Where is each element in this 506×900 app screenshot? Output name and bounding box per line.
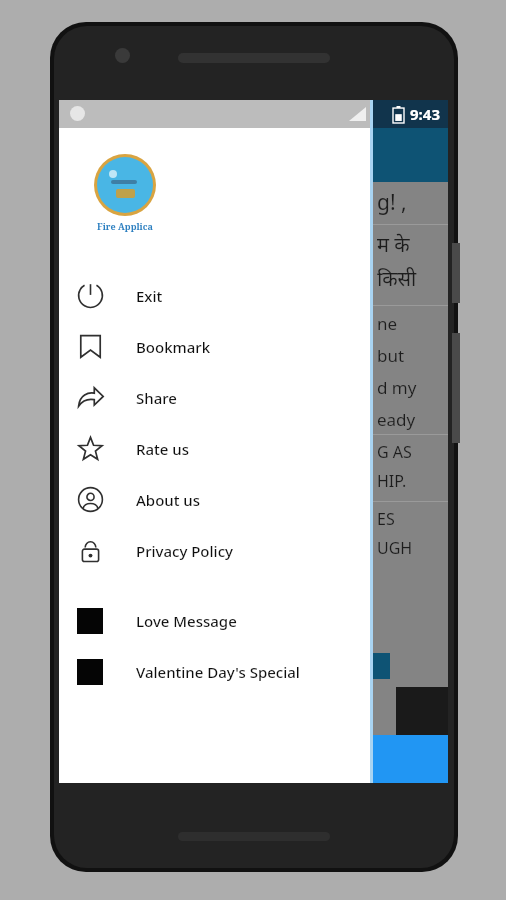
- staticText: Exit: [136, 286, 163, 306]
- button[interactable]: Rate us: [59, 423, 370, 474]
- staticText: ES: [377, 508, 395, 530]
- staticText: म के: [377, 231, 410, 258]
- button[interactable]: Exit app: [59, 270, 370, 321]
- staticText: Valentine Day's Special: [136, 662, 300, 682]
- staticText: Love Message: [136, 611, 237, 631]
- button[interactable]: Share: [59, 372, 370, 423]
- staticText: Fire Applica: [97, 220, 153, 232]
- staticText: किसी: [377, 265, 417, 292]
- button[interactable]: Privacy Policy: [59, 525, 370, 576]
- staticText: Rate us: [136, 439, 190, 459]
- staticText: About us: [136, 490, 201, 510]
- staticText: Share: [136, 388, 177, 408]
- staticText: Privacy Policy: [136, 541, 233, 561]
- staticText: eady: [377, 408, 416, 431]
- staticText: ne: [377, 312, 398, 335]
- button[interactable]: Bookmark: [59, 321, 370, 372]
- staticText: Bookmark: [136, 337, 211, 357]
- staticText: HIP.: [377, 470, 407, 492]
- button[interactable]: Recents: [336, 735, 396, 783]
- button[interactable]: Love Message: [59, 595, 370, 646]
- staticText: d my: [377, 376, 417, 399]
- staticText: g! ,: [377, 188, 407, 217]
- button[interactable]: Valentine: [59, 646, 370, 697]
- staticText: G AS: [377, 441, 412, 463]
- staticText: 9:43: [410, 104, 440, 124]
- staticText: UGH: [377, 537, 413, 559]
- staticText: but: [377, 344, 405, 367]
- button[interactable]: About us: [59, 474, 370, 525]
